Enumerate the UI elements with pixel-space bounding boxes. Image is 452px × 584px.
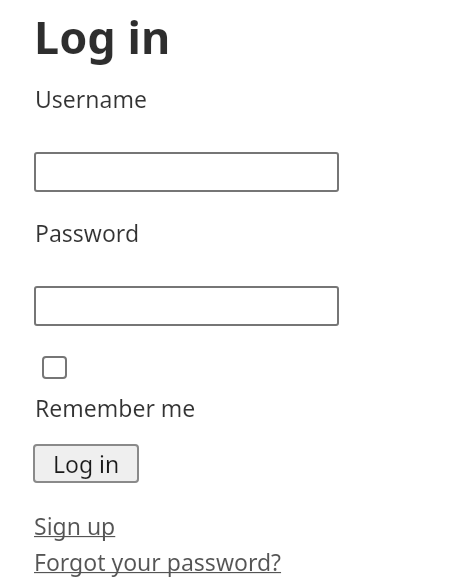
button[interactable]: Sign up — [34, 510, 116, 541]
button[interactable]: Forgot your password? — [34, 546, 282, 577]
staticText: Forgot your password? — [34, 546, 282, 577]
button[interactable]: Log in — [33, 444, 139, 483]
staticText: Sign up — [34, 510, 116, 541]
staticText: Log in — [53, 448, 120, 479]
staticText: Log in — [34, 6, 171, 67]
button[interactable]: Username input field — [34, 152, 339, 192]
button[interactable]: Password input field — [34, 286, 339, 326]
staticText: Remember me — [35, 392, 196, 423]
staticText: Password — [35, 217, 140, 248]
staticText: Username — [35, 83, 147, 114]
button[interactable]: Remember me checkbox — [42, 356, 67, 379]
